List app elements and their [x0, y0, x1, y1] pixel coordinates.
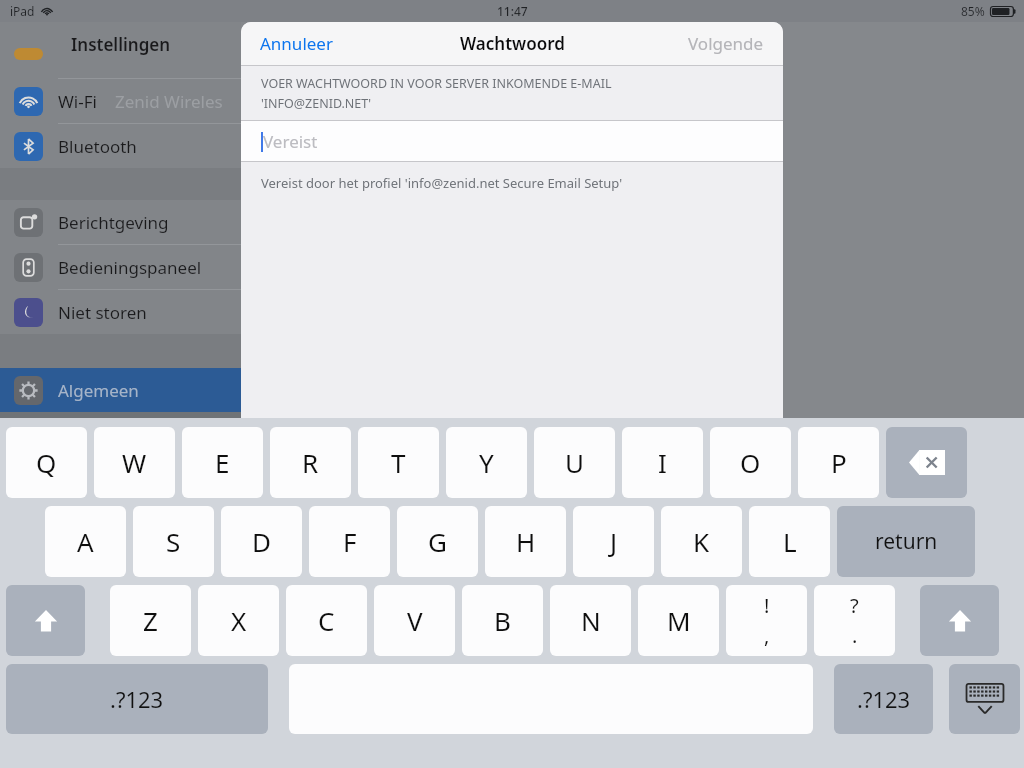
- staticText: X: [231, 603, 247, 638]
- button[interactable]: C: [286, 585, 367, 656]
- staticText: A: [77, 524, 94, 559]
- staticText: T: [391, 445, 406, 480]
- staticText: Niet storen: [58, 301, 147, 324]
- staticText: Zenid Wireles: [115, 90, 223, 113]
- staticText: P: [831, 445, 847, 480]
- button[interactable]: Niet storen: [0, 290, 241, 334]
- button[interactable]: O: [710, 427, 791, 498]
- staticText: F: [343, 524, 357, 559]
- staticText: iPad: [10, 3, 35, 19]
- staticText: 85%: [961, 3, 985, 19]
- staticText: R: [302, 445, 319, 480]
- button[interactable]: .?123: [834, 664, 933, 734]
- staticText: 'INFO@ZENID.NET': [261, 95, 372, 112]
- staticText: Wi-Fi: [58, 90, 97, 113]
- staticText: K: [693, 524, 710, 559]
- button[interactable]: N: [550, 585, 631, 656]
- staticText: B: [494, 603, 511, 638]
- staticText: D: [252, 524, 271, 559]
- button[interactable]: Hide keyboard: [949, 664, 1020, 734]
- button[interactable]: Bedieningspaneel: [0, 245, 241, 289]
- button[interactable]: F: [309, 506, 390, 577]
- button[interactable]: Berichtgeving: [0, 200, 241, 244]
- staticText: Berichtgeving: [58, 211, 169, 234]
- staticText: Vereist: [263, 130, 318, 153]
- button[interactable]: !: [726, 585, 807, 656]
- button[interactable]: Algemeen: [0, 368, 241, 412]
- button[interactable]: Wi-Fi: [0, 79, 241, 123]
- button[interactable]: .?123: [6, 664, 268, 734]
- button[interactable]: U: [534, 427, 615, 498]
- button[interactable]: Backspace: [886, 427, 967, 498]
- button[interactable]: E: [182, 427, 263, 498]
- staticText: H: [516, 524, 536, 559]
- staticText: .?123: [857, 684, 911, 714]
- staticText: Bedieningspaneel: [58, 256, 202, 279]
- button[interactable]: Bluetooth: [0, 124, 241, 168]
- button[interactable]: Shift: [920, 585, 999, 656]
- button[interactable]: T: [358, 427, 439, 498]
- button[interactable]: Annuleer: [252, 25, 341, 62]
- button[interactable]: H: [485, 506, 566, 577]
- staticText: M: [667, 603, 691, 638]
- staticText: Wachtwoord: [460, 32, 565, 55]
- staticText: W: [122, 445, 147, 480]
- button[interactable]: K: [661, 506, 742, 577]
- button[interactable]: B: [462, 585, 543, 656]
- staticText: O: [740, 445, 761, 480]
- staticText: Instellingen: [71, 33, 171, 56]
- button[interactable]: P: [798, 427, 879, 498]
- staticText: .?123: [110, 684, 164, 714]
- staticText: .: [852, 622, 858, 649]
- staticText: Bluetooth: [58, 135, 137, 158]
- staticText: I: [658, 445, 667, 480]
- button[interactable]: return: [837, 506, 975, 577]
- staticText: ,: [764, 622, 770, 649]
- staticText: N: [581, 603, 601, 638]
- staticText: return: [875, 527, 938, 556]
- staticText: V: [407, 603, 423, 638]
- button[interactable]: S: [133, 506, 214, 577]
- staticText: 11:47: [497, 3, 528, 19]
- staticText: VOER WACHTWOORD IN VOOR SERVER INKOMENDE…: [261, 75, 612, 92]
- button[interactable]: A: [45, 506, 126, 577]
- button[interactable]: R: [270, 427, 351, 498]
- staticText: Q: [36, 445, 57, 480]
- staticText: U: [565, 445, 585, 480]
- button[interactable]: Z: [110, 585, 191, 656]
- staticText: G: [428, 524, 447, 559]
- button[interactable]: X: [198, 585, 279, 656]
- staticText: ?: [850, 592, 859, 619]
- button[interactable]: ?: [814, 585, 895, 656]
- staticText: Z: [143, 603, 158, 638]
- button[interactable]: Q: [6, 427, 87, 498]
- button[interactable]: G: [397, 506, 478, 577]
- staticText: Y: [479, 445, 494, 480]
- staticText: C: [318, 603, 335, 638]
- button[interactable]: J: [573, 506, 654, 577]
- button[interactable]: W: [94, 427, 175, 498]
- button[interactable]: V: [374, 585, 455, 656]
- staticText: J: [610, 524, 618, 559]
- button[interactable]: I: [622, 427, 703, 498]
- staticText: E: [215, 445, 230, 480]
- button[interactable]: M: [638, 585, 719, 656]
- staticText: L: [783, 524, 797, 559]
- staticText: !: [764, 592, 770, 619]
- button[interactable]: Volgende: [680, 25, 772, 62]
- button[interactable]: L: [749, 506, 830, 577]
- button[interactable]: D: [221, 506, 302, 577]
- staticText: S: [166, 524, 181, 559]
- staticText: Vereist door het profiel 'info@zenid.net…: [261, 174, 623, 192]
- button[interactable]: Vereist: [241, 121, 783, 161]
- button[interactable]: Y: [446, 427, 527, 498]
- staticText: Algemeen: [58, 379, 139, 402]
- button[interactable]: Shift: [6, 585, 85, 656]
- staticText: Volgende: [688, 32, 764, 55]
- staticText: Annuleer: [260, 32, 333, 55]
